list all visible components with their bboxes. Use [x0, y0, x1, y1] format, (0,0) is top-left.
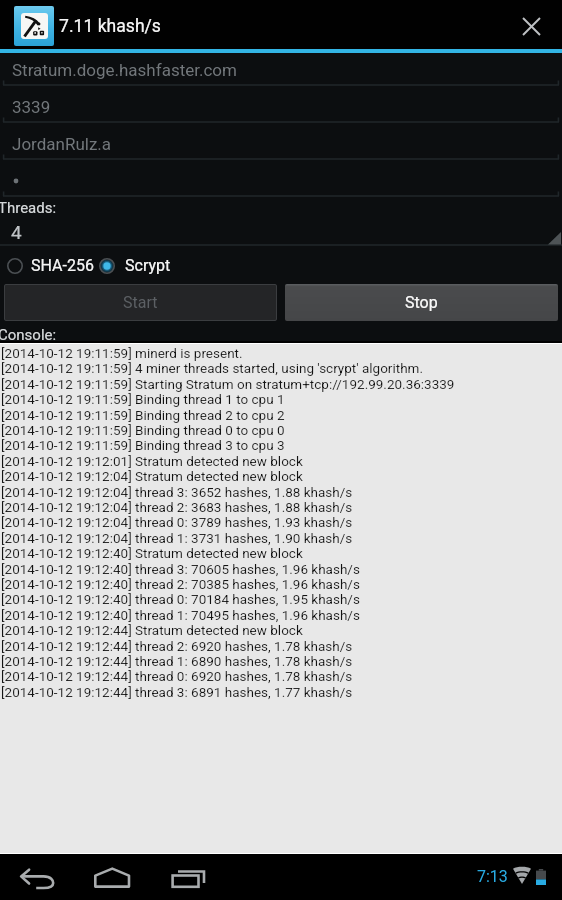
- button[interactable]: Home: [78, 855, 151, 900]
- staticText: Start: [123, 293, 158, 312]
- button[interactable]: Back: [0, 855, 73, 900]
- button[interactable]: Password: [0, 168, 562, 198]
- staticText: [2014-10-12 19:11:59] Binding thread 3 t…: [1, 437, 285, 453]
- staticText: [2014-10-12 19:12:04] thread 1: 3731 has…: [1, 530, 353, 546]
- staticText: [2014-10-12 19:12:40] thread 0: 70184 ha…: [1, 591, 360, 607]
- button[interactable]: SHA-256: [2, 251, 97, 280]
- button[interactable]: Mining app icon: [14, 6, 54, 46]
- button[interactable]: Threads: [0, 221, 562, 247]
- button[interactable]: Close: [507, 2, 556, 51]
- staticText: [2014-10-12 19:12:40] thread 1: 70495 ha…: [1, 607, 360, 623]
- button[interactable]: [2014-10-12 19:11:59] minerd is present.: [0, 343, 562, 854]
- staticText: [2014-10-12 19:12:40] thread 2: 70385 ha…: [1, 576, 360, 592]
- staticText: [2014-10-12 19:12:44] thread 2: 6920 has…: [1, 638, 353, 654]
- staticText: [2014-10-12 19:11:59] Binding thread 1 t…: [1, 391, 285, 407]
- staticText: [2014-10-12 19:11:59] minerd is present.: [1, 345, 243, 361]
- staticText: 7.11 khash/s: [59, 16, 161, 37]
- staticText: [2014-10-12 19:12:04] thread 3: 3652 has…: [1, 484, 353, 500]
- staticText: [2014-10-12 19:12:40] Stratum detected n…: [1, 545, 303, 561]
- staticText: [2014-10-12 19:12:40] thread 3: 70605 ha…: [1, 561, 360, 577]
- staticText: [2014-10-12 19:11:59] Binding thread 0 t…: [1, 422, 285, 438]
- staticText: Console:: [0, 326, 57, 344]
- button[interactable]: Stratum.doge.hashfaster.com: [0, 57, 562, 87]
- staticText: JordanRulz.a: [12, 134, 112, 154]
- staticText: [2014-10-12 19:12:44] Stratum detected n…: [1, 622, 303, 638]
- staticText: Stop: [405, 293, 438, 312]
- staticText: SHA-256: [31, 256, 94, 275]
- button[interactable]: Stop: [285, 284, 558, 321]
- button[interactable]: Start: [4, 284, 277, 321]
- staticText: 4: [11, 221, 22, 243]
- staticText: [2014-10-12 19:12:04] thread 2: 3683 has…: [1, 499, 353, 515]
- staticText: [2014-10-12 19:12:44] thread 3: 6891 has…: [1, 684, 353, 700]
- staticText: [2014-10-12 19:11:59] 4 miner threads st…: [1, 360, 423, 376]
- staticText: Stratum.doge.hashfaster.com: [12, 60, 237, 80]
- staticText: [2014-10-12 19:12:04] thread 0: 3789 has…: [1, 514, 353, 530]
- staticText: 7:13: [477, 867, 508, 886]
- staticText: Scrypt: [125, 256, 171, 275]
- button[interactable]: Scrypt: [98, 251, 175, 280]
- button[interactable]: 3339: [0, 94, 562, 124]
- staticText: [2014-10-12 19:12:44] thread 0: 6920 has…: [1, 668, 353, 684]
- staticText: [2014-10-12 19:11:59] Starting Stratum o…: [1, 376, 455, 392]
- staticText: Threads:: [0, 199, 57, 217]
- staticText: [2014-10-12 19:12:44] thread 1: 6890 has…: [1, 653, 353, 669]
- staticText: 3339: [12, 97, 51, 117]
- staticText: [2014-10-12 19:12:01] Stratum detected n…: [1, 453, 303, 469]
- staticText: [2014-10-12 19:11:59] Binding thread 2 t…: [1, 407, 285, 423]
- staticText: [2014-10-12 19:12:04] Stratum detected n…: [1, 468, 303, 484]
- button[interactable]: JordanRulz.a: [0, 131, 562, 161]
- button[interactable]: Recents: [155, 855, 228, 900]
